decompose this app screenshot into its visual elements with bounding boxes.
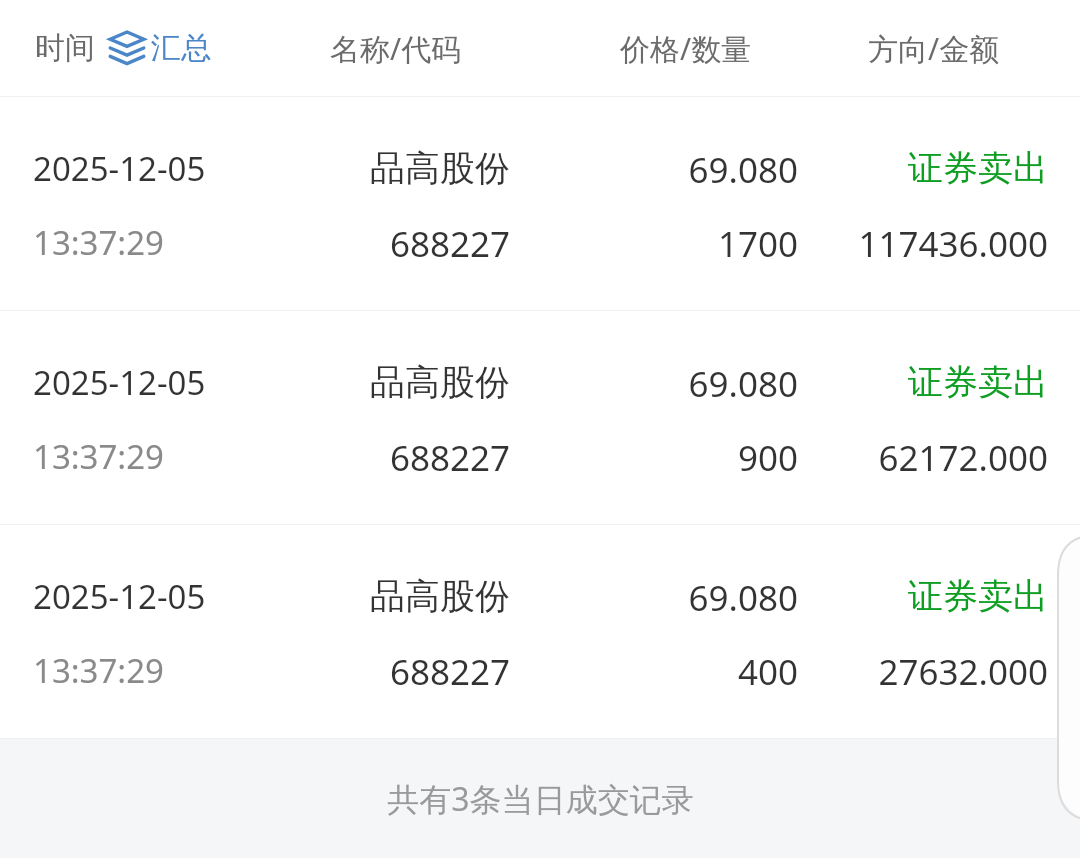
staticText: 1700 — [538, 220, 798, 268]
staticText: 400 — [538, 648, 798, 696]
staticText: 共有3条当日成交记录 — [387, 777, 694, 821]
staticText: 688227 — [250, 434, 510, 482]
staticText: 品高股份 — [250, 360, 510, 404]
staticText: 688227 — [250, 220, 510, 268]
staticText: 62172.000 — [738, 434, 1048, 482]
staticText: 品高股份 — [250, 574, 510, 618]
staticText: 117436.000 — [738, 220, 1048, 268]
staticText: 69.080 — [538, 574, 798, 622]
staticText: 证券卖出 — [788, 574, 1048, 618]
staticText: 13:37:29 — [33, 434, 164, 479]
button[interactable]: 方向/金额 — [868, 22, 1000, 75]
staticText: 27632.000 — [738, 648, 1048, 696]
staticText: 2025-12-05 — [33, 360, 206, 405]
staticText: 69.080 — [538, 360, 798, 408]
button[interactable]: 2025-12-05 — [0, 525, 1080, 738]
staticText: 2025-12-05 — [33, 574, 206, 619]
staticText: 900 — [538, 434, 798, 482]
staticText: 品高股份 — [250, 146, 510, 190]
staticText: 13:37:29 — [33, 220, 164, 265]
staticText: 证券卖出 — [788, 146, 1048, 190]
staticText: 汇总 — [151, 29, 211, 67]
button[interactable]: 2025-12-05 — [0, 311, 1080, 524]
button[interactable]: 价格/数量 — [620, 22, 752, 75]
staticText: 价格/数量 — [620, 28, 752, 69]
button[interactable]: 时间 — [33, 22, 213, 74]
staticText: 688227 — [250, 648, 510, 696]
staticText: 证券卖出 — [788, 360, 1048, 404]
staticText: 方向/金额 — [868, 28, 1000, 69]
staticText: 时间 — [35, 29, 95, 67]
button[interactable]: 2025-12-05 — [0, 97, 1080, 310]
staticText: 69.080 — [538, 146, 798, 194]
button[interactable]: 名称/代码 — [330, 22, 462, 75]
staticText: 2025-12-05 — [33, 146, 206, 191]
staticText: 名称/代码 — [330, 28, 462, 69]
staticText: 13:37:29 — [33, 648, 164, 693]
